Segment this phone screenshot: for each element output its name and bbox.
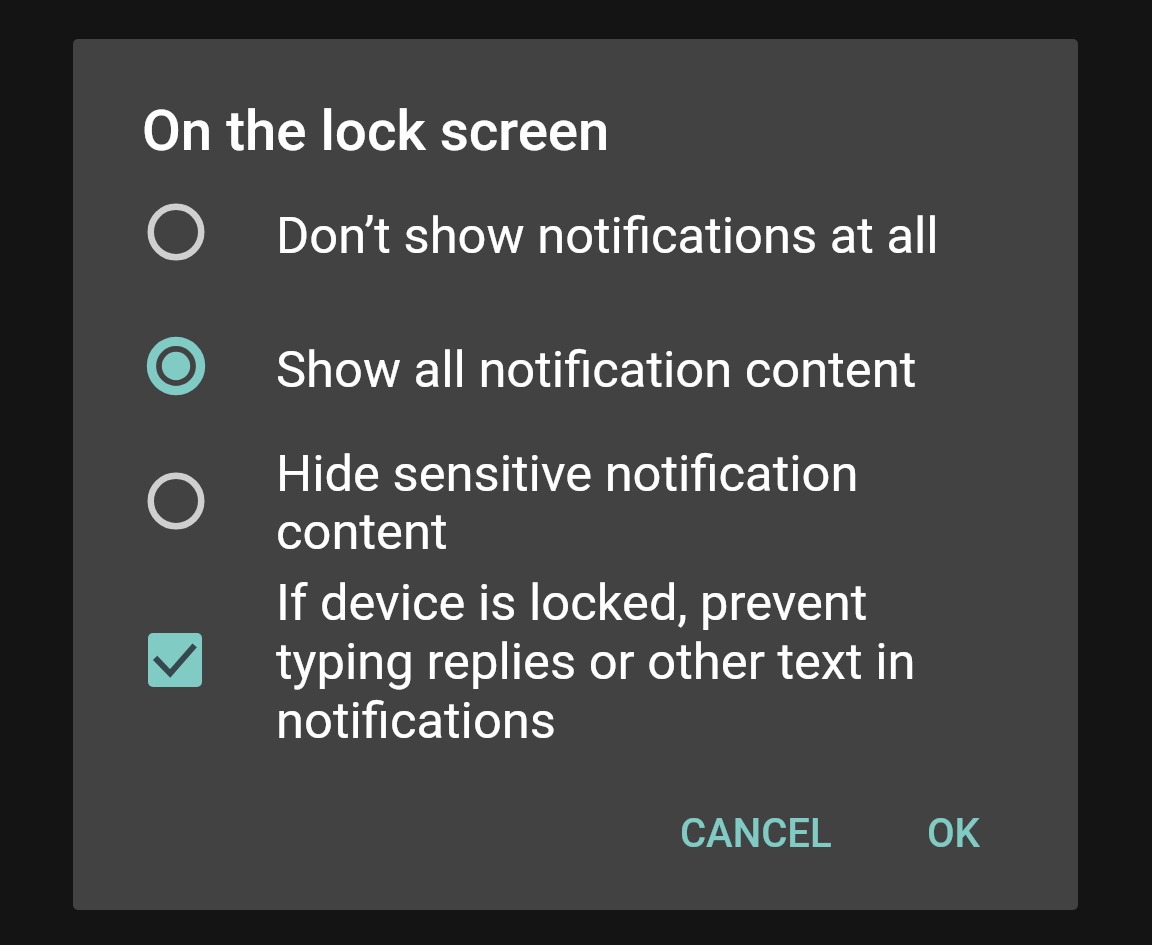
button[interactable]: Show all notification content xyxy=(73,300,1078,434)
button[interactable]: If device is locked, prevent xyxy=(73,569,1078,750)
staticText: If device is locked, prevent xyxy=(276,573,868,632)
staticText: Show all notification content xyxy=(276,340,917,399)
staticText: typing replies or other text in xyxy=(276,632,916,691)
staticText: Hide sensitive notification xyxy=(276,444,859,503)
button[interactable]: OK xyxy=(901,797,1009,869)
staticText: CANCEL xyxy=(680,810,832,857)
staticText: On the lock screen xyxy=(142,98,610,164)
button[interactable]: Hide sensitive notification xyxy=(73,434,1078,569)
staticText: content xyxy=(276,502,448,561)
button[interactable]: Don’t show notifications at all xyxy=(73,165,1078,300)
staticText: OK xyxy=(927,810,980,857)
button[interactable]: CANCEL xyxy=(654,797,858,869)
staticText: notifications xyxy=(276,691,556,750)
staticText: Don’t show notifications at all xyxy=(276,206,939,265)
